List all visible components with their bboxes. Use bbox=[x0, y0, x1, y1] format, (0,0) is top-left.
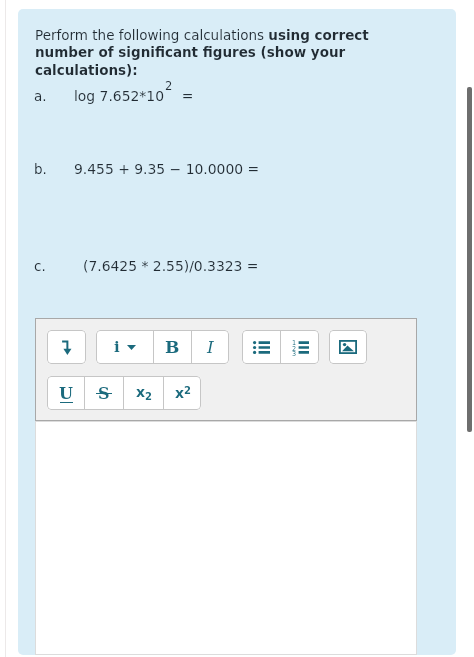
staticText: Perform the following calculations using… bbox=[35, 27, 385, 78]
button[interactable]: Numbered list bbox=[281, 330, 319, 364]
staticText: (7.6425 * 2.55)/0.3323 = bbox=[83, 258, 259, 274]
staticText: i bbox=[114, 338, 120, 356]
staticText: B bbox=[165, 337, 180, 357]
staticText: 1 bbox=[292, 339, 297, 347]
button[interactable]: Toolbar button bbox=[329, 330, 367, 364]
button[interactable]: Answer text editor bbox=[35, 421, 417, 655]
staticText: 3 bbox=[292, 350, 297, 358]
button[interactable]: Subscript bbox=[124, 376, 163, 410]
button[interactable]: Bold bbox=[154, 330, 191, 364]
staticText: c. bbox=[34, 258, 46, 274]
button[interactable]: Strikethrough bbox=[85, 376, 123, 410]
button[interactable]: Superscript bbox=[164, 376, 201, 410]
staticText: 2 bbox=[165, 79, 173, 92]
staticText: I bbox=[207, 337, 214, 357]
staticText: x2 bbox=[175, 385, 191, 402]
button[interactable]: Toolbar button bbox=[47, 330, 86, 364]
staticText: a. bbox=[34, 88, 47, 104]
staticText: b. bbox=[34, 161, 47, 177]
button[interactable]: Bulleted list bbox=[242, 330, 280, 364]
staticText: 9.455 + 9.35 − 10.0000 = bbox=[74, 161, 260, 177]
staticText: x2 bbox=[136, 384, 152, 402]
button[interactable]: Italic bbox=[192, 330, 229, 364]
staticText: 2 bbox=[292, 345, 297, 353]
staticText: log 7.652*10 = bbox=[74, 88, 194, 104]
staticText: S bbox=[98, 384, 110, 403]
staticText: U bbox=[59, 384, 73, 403]
button[interactable]: Underline bbox=[47, 376, 84, 410]
button[interactable]: Font bbox=[96, 330, 153, 364]
